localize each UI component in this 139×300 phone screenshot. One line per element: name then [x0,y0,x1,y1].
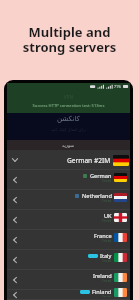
staticText: German [90,172,112,180]
staticText: Finland [92,288,112,296]
other: Expand [11,256,19,264]
staticText: Netherland [82,192,112,200]
button[interactable]: Expand [7,190,130,210]
button[interactable]: Expand [7,210,130,230]
button[interactable]: Collapse [7,150,130,170]
other: Expand [11,276,19,284]
staticText: Success HTTP connection test: 513ms [7,103,130,109]
staticText: Tested [102,279,112,283]
staticText: Tested [102,179,112,183]
staticText: UK [104,212,112,220]
staticText: Tested [102,239,112,243]
staticText: کانکشن [57,115,80,123]
other: Expand [11,176,19,184]
button[interactable]: Expand [7,230,130,250]
other: Expand [11,236,19,244]
staticText: Multiple and strong servers [0,23,139,56]
other: Expand [11,216,19,224]
staticText: Tested [102,295,112,297]
button[interactable]: Expand [7,250,130,270]
staticText: Tested [102,219,112,223]
staticText: Ireland [93,272,112,280]
staticText: Italy [100,252,112,260]
button[interactable]: Expand [7,270,130,290]
other: Collapse [11,156,19,164]
staticText: برای اتصال کلیک کنید [51,127,86,132]
other: Expand [11,291,19,299]
button[interactable]: Expand [7,290,130,300]
staticText: Tested [102,199,112,203]
staticText: 71% [114,84,122,89]
other: Expand [11,196,19,204]
staticText: سوریه [62,143,75,148]
staticText: German #2IM [67,156,111,165]
staticText: France [94,232,112,240]
button[interactable]: Expand [7,170,130,190]
staticText: Tested [102,259,112,263]
